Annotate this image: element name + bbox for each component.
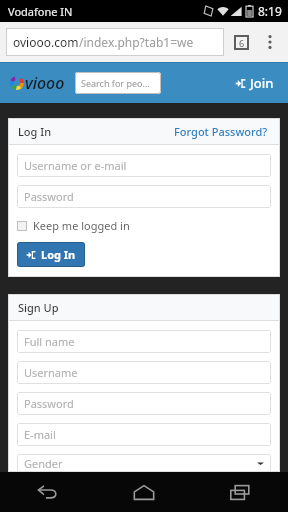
staticText: Gender [24,456,63,471]
button[interactable]: Username [17,361,271,384]
button[interactable]: Join [231,70,278,96]
staticText: Password [24,189,74,204]
button[interactable]: Username or e-mail [17,154,271,177]
staticText: Search for peo... [81,77,150,89]
staticText: Forgot Password? [174,124,268,139]
staticText: Join [250,74,274,92]
staticText: Username [24,365,78,380]
button[interactable]: Tabs, 6 open [224,22,258,62]
staticText: 8:19 [258,3,282,19]
button[interactable]: Password [17,392,271,415]
button[interactable]: Gender [17,454,271,472]
button[interactable]: More options [258,22,282,62]
staticText: Password [24,396,74,411]
button[interactable]: Full name [17,330,271,353]
button[interactable]: Back [0,472,96,512]
staticText: Username or e-mail [24,158,127,173]
staticText: /index.php?tab1=we [79,34,194,50]
staticText: Sign Up [18,300,59,315]
staticText: Keep me logged in [33,218,130,233]
staticText: Full name [24,334,75,349]
button[interactable]: oviooo.com [6,28,224,56]
button[interactable]: Search for peo... [75,72,161,94]
staticText: oviooo.com [13,34,79,50]
staticText: 6 [239,37,245,49]
staticText: E-mail [24,427,56,442]
staticText: Log In [41,247,76,262]
staticText: Log In [18,124,52,139]
button[interactable]: Forgot Password? [172,121,270,142]
button[interactable]: Log In [17,242,85,267]
button[interactable]: E-mail [17,423,271,446]
button[interactable]: Password [17,185,271,208]
button[interactable]: Recent apps [192,472,288,512]
staticText: viooo [25,72,65,94]
button[interactable]: Keep me logged in [17,217,130,234]
staticText: Vodafone IN [8,4,73,19]
button[interactable]: Home [96,472,192,512]
